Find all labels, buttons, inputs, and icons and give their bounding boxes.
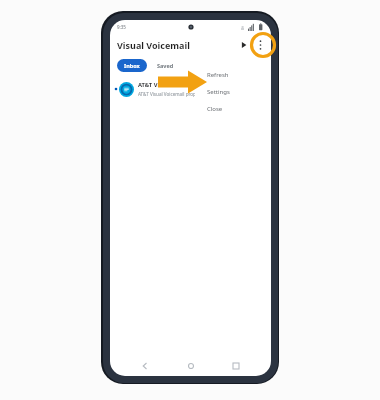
staticText: AT&T Visual Voicemail properties [138, 91, 209, 97]
button[interactable]: Close [195, 100, 271, 117]
button[interactable]: Play all [237, 38, 251, 52]
button[interactable]: Back [135, 356, 155, 376]
staticText: Saved [157, 62, 174, 69]
button[interactable]: Saved [152, 59, 179, 72]
staticText: AT&T Visual Voicemail [138, 81, 201, 89]
button[interactable]: AT&T Visual Voicemail [110, 76, 271, 102]
staticText: Refresh [207, 71, 229, 79]
button[interactable]: More options [251, 36, 269, 54]
staticText: Inbox [124, 62, 140, 69]
staticText: Visual Voicemail [117, 39, 190, 51]
button[interactable]: Inbox [117, 59, 147, 72]
button[interactable]: Refresh [195, 66, 271, 83]
button[interactable]: Recent apps [226, 356, 246, 376]
staticText: Settings [207, 88, 230, 96]
staticText: 9:35 [117, 24, 126, 30]
button[interactable]: Settings [195, 83, 271, 100]
staticText: Close [207, 105, 223, 113]
button[interactable]: Home [181, 356, 201, 376]
